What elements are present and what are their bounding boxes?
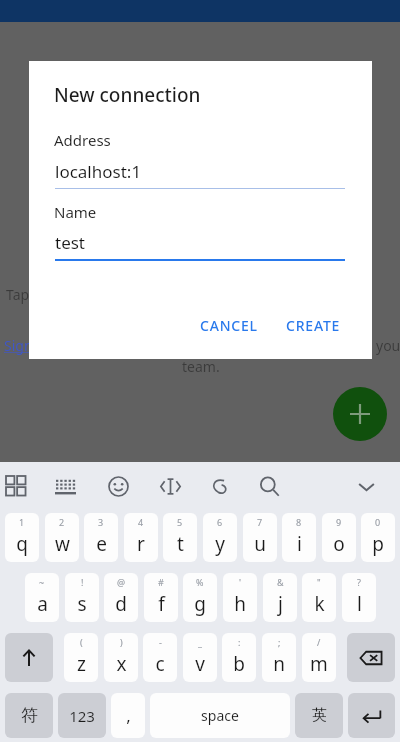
staticText: - [159,636,162,648]
button[interactable]: _ [183,633,217,682]
staticText: e [96,531,107,557]
staticText: / [317,636,321,648]
staticText: 8 [296,516,302,528]
staticText: & [277,576,284,588]
staticText: y [215,531,225,557]
staticText: g [194,591,206,617]
staticText: ; [278,636,281,648]
staticText: " [317,576,321,588]
staticText: k [314,591,325,617]
button[interactable]: ' [223,573,257,622]
staticText: m [310,651,328,677]
staticText: u [254,531,266,557]
button[interactable]: 123 [58,693,106,738]
staticText: p [372,531,384,557]
button[interactable]: 9 [322,513,356,562]
staticText: 1 [19,516,25,528]
staticText: team. [182,357,220,376]
staticText: ' [239,576,242,588]
button[interactable]: ! [65,573,99,622]
staticText: d [115,591,127,617]
staticText: ~ [39,576,45,588]
staticText: Address [54,130,111,150]
button[interactable]: 1 [5,513,39,562]
button[interactable]: 2 [45,513,79,562]
button[interactable]: ) [104,633,138,682]
staticText: v [195,651,205,677]
staticText: z [77,651,86,677]
button[interactable]: @ [104,573,138,622]
staticText: 4 [138,516,144,528]
staticText: o [333,531,345,557]
button[interactable]: 3 [84,513,118,562]
staticText: ) [120,636,123,648]
button[interactable]: Shift [5,633,53,682]
button[interactable]: " [302,573,336,622]
staticText: a [37,591,48,617]
button[interactable]: ~ [25,573,59,622]
button[interactable]: 4 [124,513,158,562]
staticText: l [357,591,362,617]
staticText: space [201,706,239,725]
staticText: Tap ow [6,285,238,304]
staticText: f [158,591,165,617]
staticText: localhost:1 [55,160,142,183]
staticText: w [55,531,70,557]
staticText: ? [357,576,361,588]
staticText: 3 [98,516,104,528]
staticText: % [196,576,204,588]
staticText: # [158,576,164,588]
staticText: your [376,336,400,355]
staticText: 9 [336,516,342,528]
staticText: Sign [4,336,33,355]
button[interactable]: CREATE [278,310,349,341]
button[interactable]: Hide keyboard [352,472,380,500]
staticText: 7 [257,516,263,528]
staticText: @ [117,576,126,588]
button[interactable]: : [222,633,256,682]
staticText: , [126,704,131,727]
button[interactable]: 7 [243,513,277,562]
staticText: : [238,636,241,648]
button[interactable]: Widgets [2,472,30,500]
staticText: i [297,531,302,557]
button[interactable]: ( [64,633,98,682]
staticText: CREATE [286,316,341,335]
staticText: ( [80,636,83,648]
button[interactable]: Enter [348,693,395,738]
button[interactable]: ; [262,633,296,682]
button[interactable]: space [150,693,290,738]
button[interactable]: Clipboard [205,472,233,500]
staticText: r [137,531,145,557]
button[interactable]: Add connection [333,387,387,441]
button[interactable]: Text cursor [156,472,184,500]
button[interactable]: 8 [282,513,316,562]
button[interactable]: 6 [203,513,237,562]
staticText: _ [198,636,202,648]
button[interactable]: 英 [295,693,343,738]
button[interactable]: - [143,633,177,682]
staticText: New connection [54,82,201,108]
staticText: s [77,591,87,617]
staticText: 英 [312,706,327,725]
button[interactable]: # [144,573,178,622]
staticText: c [155,651,165,677]
button[interactable]: % [183,573,217,622]
staticText: b [233,651,245,677]
button[interactable]: Emoji [104,472,132,500]
button[interactable]: CANCEL [192,310,266,341]
button[interactable]: 符 [5,693,53,738]
staticText: Name [54,202,97,222]
button[interactable]: Keyboard layout [51,472,79,500]
staticText: t [177,531,184,557]
button[interactable]: ? [342,573,376,622]
button[interactable]: & [263,573,297,622]
staticText: CANCEL [200,316,258,335]
staticText: 123 [69,706,95,726]
button[interactable]: Search [255,472,283,500]
button[interactable]: 5 [163,513,197,562]
button[interactable]: , [111,693,145,738]
button[interactable]: Backspace [347,633,395,682]
button[interactable]: 0 [361,513,395,562]
button[interactable]: / [302,633,336,682]
